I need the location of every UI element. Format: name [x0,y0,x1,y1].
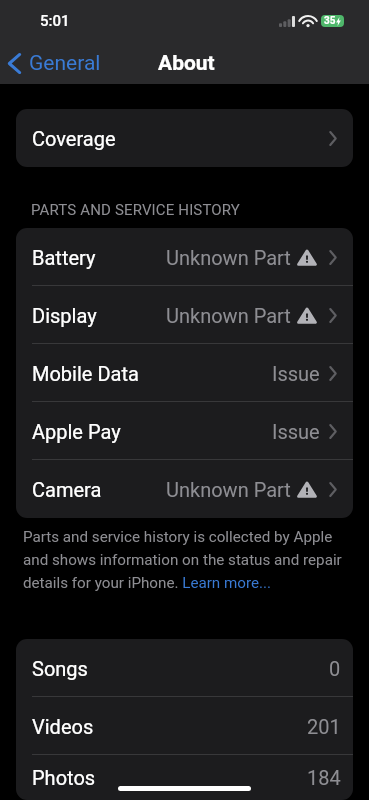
staticText: Apple Pay [32,420,121,443]
staticText: 0 [329,657,341,680]
staticText: Songs [32,657,88,680]
staticText: 35 [324,15,336,27]
button[interactable]: Videos [16,697,353,755]
staticText: About [158,51,215,76]
staticText: Videos [32,715,94,738]
other: Warning [297,307,317,325]
staticText: Battery [32,246,96,269]
staticText: Issue [272,362,320,385]
button[interactable]: Apple Pay [16,402,353,460]
staticText: Unknown Part [166,246,291,269]
button[interactable]: Coverage [16,109,353,167]
button[interactable]: Battery [16,228,353,286]
button[interactable]: Songs [16,639,353,697]
other: Warning [297,481,317,499]
button[interactable]: Camera [16,460,353,518]
staticText: 184 [307,766,341,789]
button[interactable]: Display [16,286,353,344]
staticText: Unknown Part [166,304,291,327]
staticText: Parts and service history is collected b… [23,528,346,592]
staticText: Mobile Data [32,362,139,385]
staticText: Photos [32,766,96,789]
other: Warning [297,249,317,267]
staticText: 201 [307,715,341,738]
staticText: Display [32,304,97,327]
staticText: Unknown Part [166,478,291,501]
staticText: 5:01 [40,12,70,30]
staticText: Camera [32,478,102,501]
staticText: Issue [272,420,320,443]
button[interactable]: Photos [16,755,353,800]
staticText: General [29,51,101,76]
staticText: Coverage [32,127,116,150]
button[interactable]: General [0,46,111,81]
staticText: PARTS AND SERVICE HISTORY [31,201,240,219]
button[interactable]: Mobile Data [16,344,353,402]
